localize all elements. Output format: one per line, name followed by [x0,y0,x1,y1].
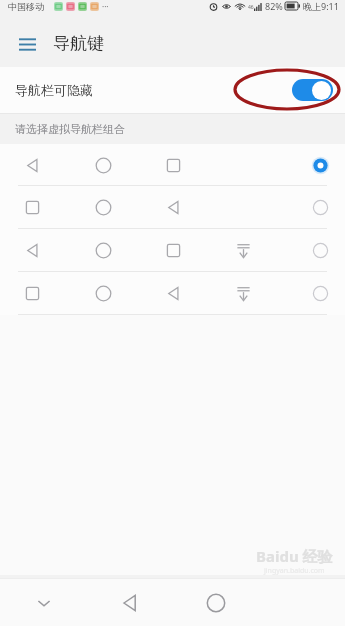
staticText: Baidu 经验 [256,546,333,566]
button[interactable]: 导航栏可隐藏 [0,67,345,113]
staticText: 中国移动 [8,1,44,12]
button[interactable] [0,229,345,271]
button[interactable]: Navigation bar hideable toggle [292,79,333,101]
staticText: 82% [265,0,283,12]
button[interactable] [0,186,345,228]
button[interactable]: Back [87,579,173,626]
button[interactable] [0,272,345,314]
staticText: 晚上9:11 [303,0,339,12]
button[interactable] [0,144,345,185]
staticText: ··· [102,1,109,12]
staticText: jingyan.baidu.com [264,566,325,576]
staticText: 导航栏可隐藏 [15,82,93,98]
staticText: 导航键 [53,33,104,54]
button[interactable]: Menu [12,29,42,59]
staticText: 46 [248,4,254,11]
button[interactable]: Home [173,579,259,626]
button[interactable]: Hide navigation bar [0,579,87,626]
staticText: 请选择虚拟导航栏组合 [15,122,125,136]
